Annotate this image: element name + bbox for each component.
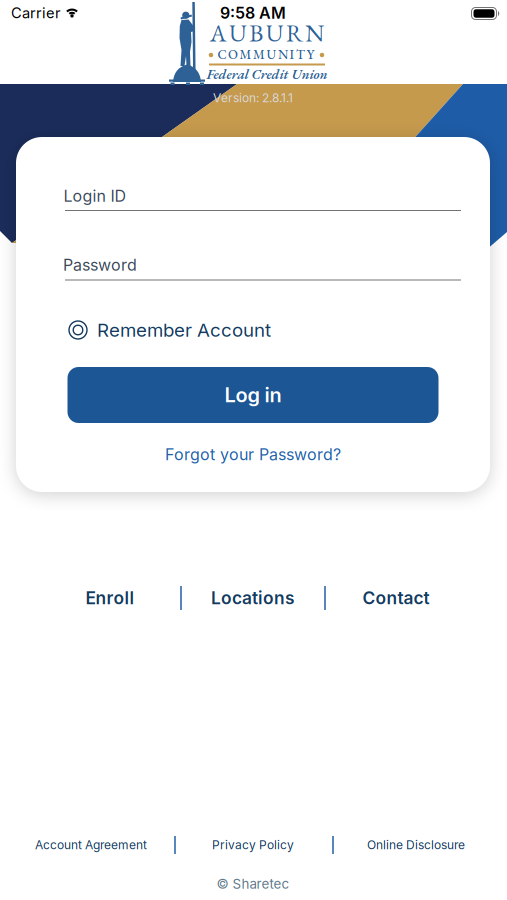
button[interactable]: Locations	[211, 588, 295, 608]
staticText: Version: 2.8.1.1	[213, 91, 293, 105]
staticText: Remember Account	[97, 319, 271, 341]
staticText: Federal Credit Union	[206, 65, 327, 83]
button[interactable]: Privacy Policy	[212, 838, 294, 852]
staticText: Login ID	[63, 187, 126, 205]
button[interactable]: Enroll	[85, 588, 134, 608]
staticText: 9:58 AM	[220, 4, 286, 22]
button[interactable]: Online Disclosure	[367, 838, 465, 852]
button[interactable]: Account Agreement	[35, 838, 147, 852]
staticText: COMMUNITY	[217, 46, 314, 63]
staticText: Enroll	[85, 588, 134, 608]
staticText: Account Agreement	[35, 838, 147, 852]
staticText: AUBURN	[210, 17, 324, 49]
staticText: © Sharetec	[216, 876, 289, 892]
button[interactable]: Log in	[67, 367, 438, 423]
staticText: Password	[63, 256, 137, 274]
staticText: Log in	[224, 383, 281, 407]
staticText: Privacy Policy	[212, 838, 294, 852]
staticText: Contact	[362, 588, 429, 608]
staticText: Locations	[211, 588, 295, 608]
staticText: Online Disclosure	[367, 838, 465, 852]
button[interactable]: Forgot your Password?	[165, 445, 341, 464]
staticText: Carrier	[11, 4, 61, 22]
button[interactable]: Remember Account	[69, 319, 271, 341]
button[interactable]: Contact	[362, 588, 429, 608]
staticText: Forgot your Password?	[165, 445, 341, 464]
